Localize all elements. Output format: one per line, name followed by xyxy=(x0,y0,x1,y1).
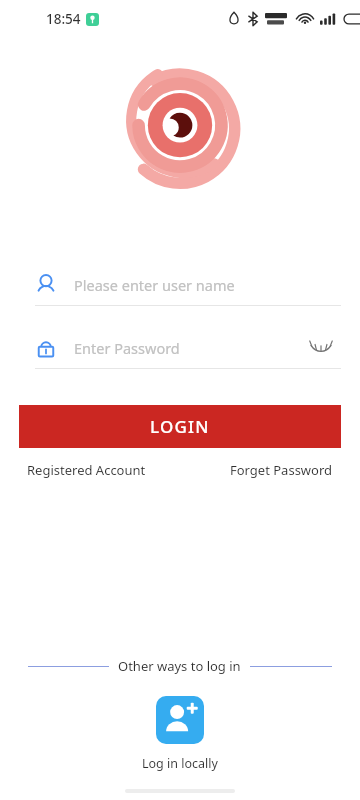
button[interactable]: LOGIN xyxy=(19,405,341,448)
button[interactable]: Forget Password xyxy=(230,461,333,479)
button[interactable]: Registered Account xyxy=(27,461,146,479)
staticText: 18:54 xyxy=(46,10,81,28)
button[interactable]: Log in locally xyxy=(0,696,360,772)
button[interactable]: Please enter user name xyxy=(19,266,341,303)
staticText: Registered Account xyxy=(27,461,146,479)
other: Log in locally xyxy=(156,696,204,744)
staticText: LOGIN xyxy=(150,415,210,438)
staticText: Log in locally xyxy=(142,755,218,772)
staticText: Enter Password xyxy=(74,338,309,358)
button[interactable]: Show password xyxy=(309,340,333,356)
staticText: Other ways to log in xyxy=(118,657,241,675)
staticText: Please enter user name xyxy=(74,275,341,295)
button[interactable]: Enter Password xyxy=(19,329,341,366)
staticText: Forget Password xyxy=(230,461,333,479)
